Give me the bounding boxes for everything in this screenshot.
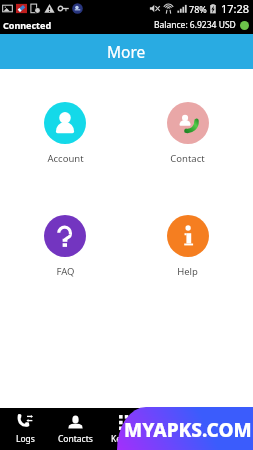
staticText: Settings — [160, 433, 193, 445]
staticText: Contacts — [58, 433, 93, 445]
button[interactable]: FAQ — [4, 215, 126, 278]
staticText: Balance: 6.9234 USD — [154, 19, 236, 31]
staticText: 78% — [189, 3, 207, 15]
staticText: More — [217, 433, 238, 445]
button[interactable]: Contacts — [50, 408, 100, 450]
button[interactable]: Keypad — [100, 408, 151, 450]
staticText: Account — [47, 152, 84, 165]
staticText: Contact — [170, 152, 205, 165]
staticText: Logs — [16, 433, 35, 445]
button[interactable]: Settings — [151, 408, 202, 450]
button[interactable]: Account — [4, 102, 126, 165]
button[interactable]: Logs — [0, 408, 50, 450]
staticText: More — [107, 41, 146, 62]
button[interactable]: More — [202, 408, 253, 450]
staticText: Help — [177, 265, 198, 278]
staticText: FAQ — [56, 265, 75, 278]
staticText: Keypad — [111, 433, 141, 445]
staticText: 17:28 — [221, 1, 250, 16]
button[interactable]: Help — [126, 215, 249, 278]
button[interactable]: Contact — [126, 102, 249, 165]
staticText: MYAPKS.COM — [124, 417, 252, 443]
staticText: Connected — [3, 19, 52, 31]
